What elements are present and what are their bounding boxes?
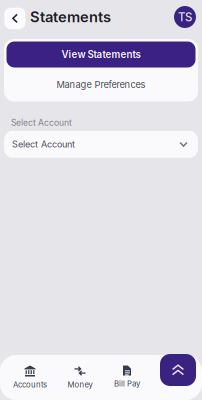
- staticText: Statements: [30, 8, 111, 26]
- staticText: Select Account: [11, 117, 72, 128]
- button[interactable]: Accounts: [0, 355, 60, 400]
- button[interactable]: Back: [3, 6, 24, 28]
- staticText: Money: [67, 380, 92, 389]
- staticText: Accounts: [13, 380, 47, 389]
- staticText: TS: [178, 10, 192, 24]
- staticText: View Statements: [61, 49, 140, 60]
- button[interactable]: Quick actions: [160, 354, 196, 386]
- button[interactable]: View Statements: [6, 41, 195, 67]
- button[interactable]: Select Account: [4, 131, 198, 158]
- button[interactable]: Money: [60, 355, 100, 400]
- staticText: Bill Pay: [114, 379, 140, 388]
- staticText: Select Account: [12, 139, 75, 150]
- button[interactable]: Manage Preferences: [6, 67, 195, 101]
- button[interactable]: Bill Pay: [100, 355, 154, 400]
- staticText: Manage Preferences: [56, 79, 145, 90]
- button[interactable]: Profile: [174, 6, 196, 28]
